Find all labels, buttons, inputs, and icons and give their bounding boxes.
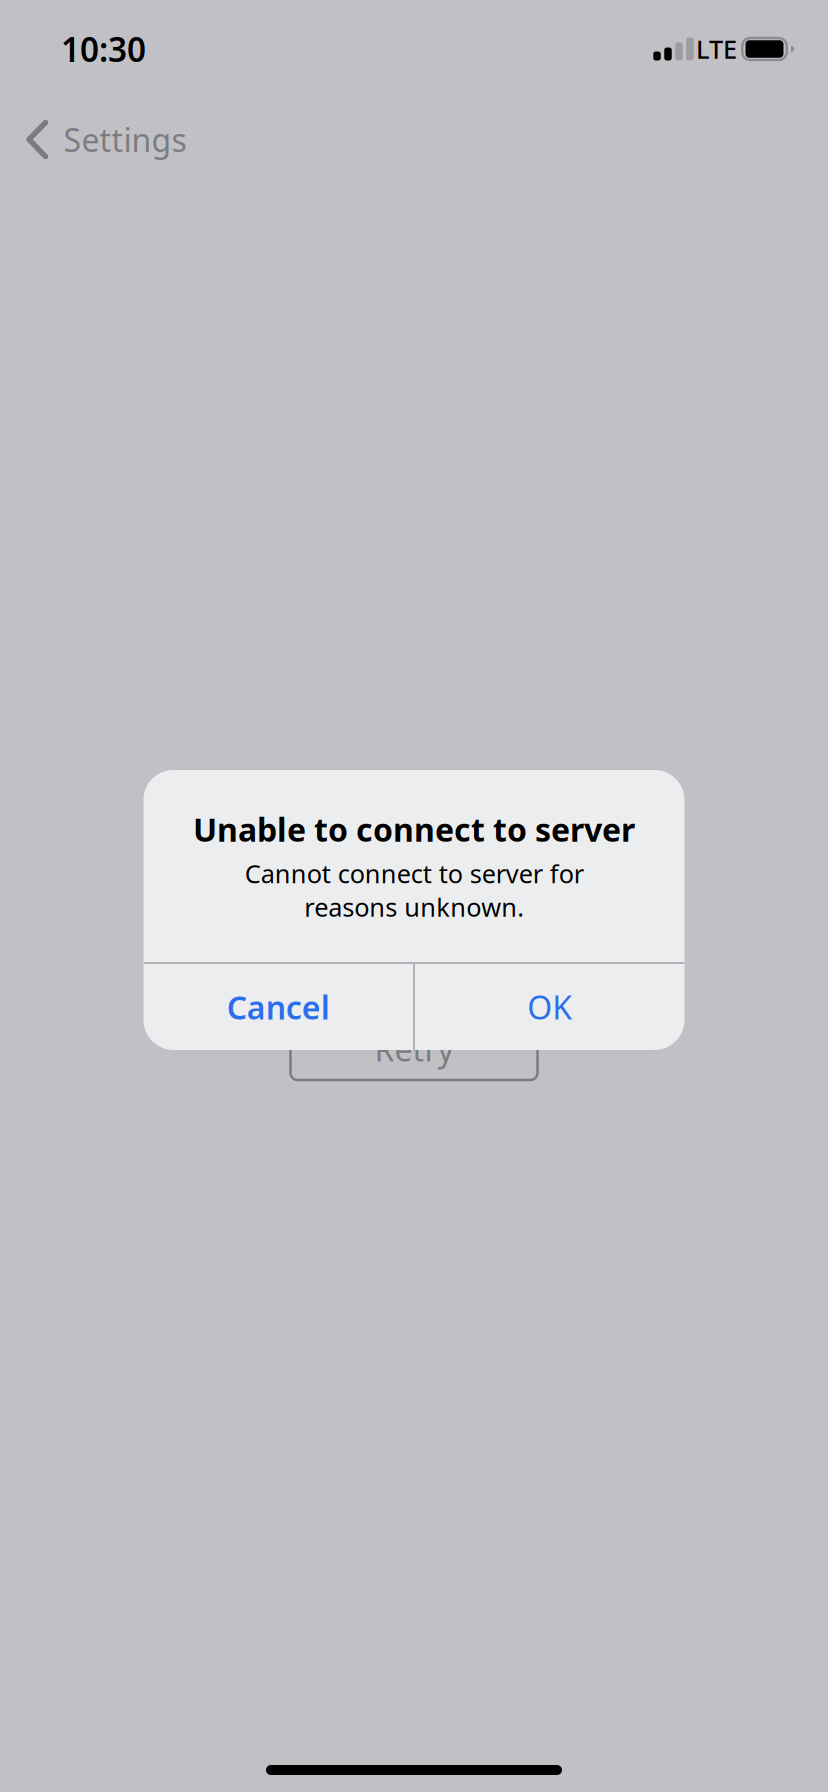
staticText: Cancel [227,986,330,1028]
button[interactable]: Retry [290,1018,537,1080]
staticText: LTE [696,32,737,66]
staticText: Cannot connect to server for reasons unk… [244,856,583,924]
staticText: Unable to connect to server [193,808,635,850]
staticText: 10:30 [61,27,146,71]
button[interactable]: Back to Settings [26,108,212,170]
button[interactable]: Cancel [143,964,413,1050]
button[interactable]: OK [415,964,684,1050]
staticText: Retry [374,1028,453,1070]
staticText: OK [527,986,572,1028]
staticText: Settings [63,118,186,161]
